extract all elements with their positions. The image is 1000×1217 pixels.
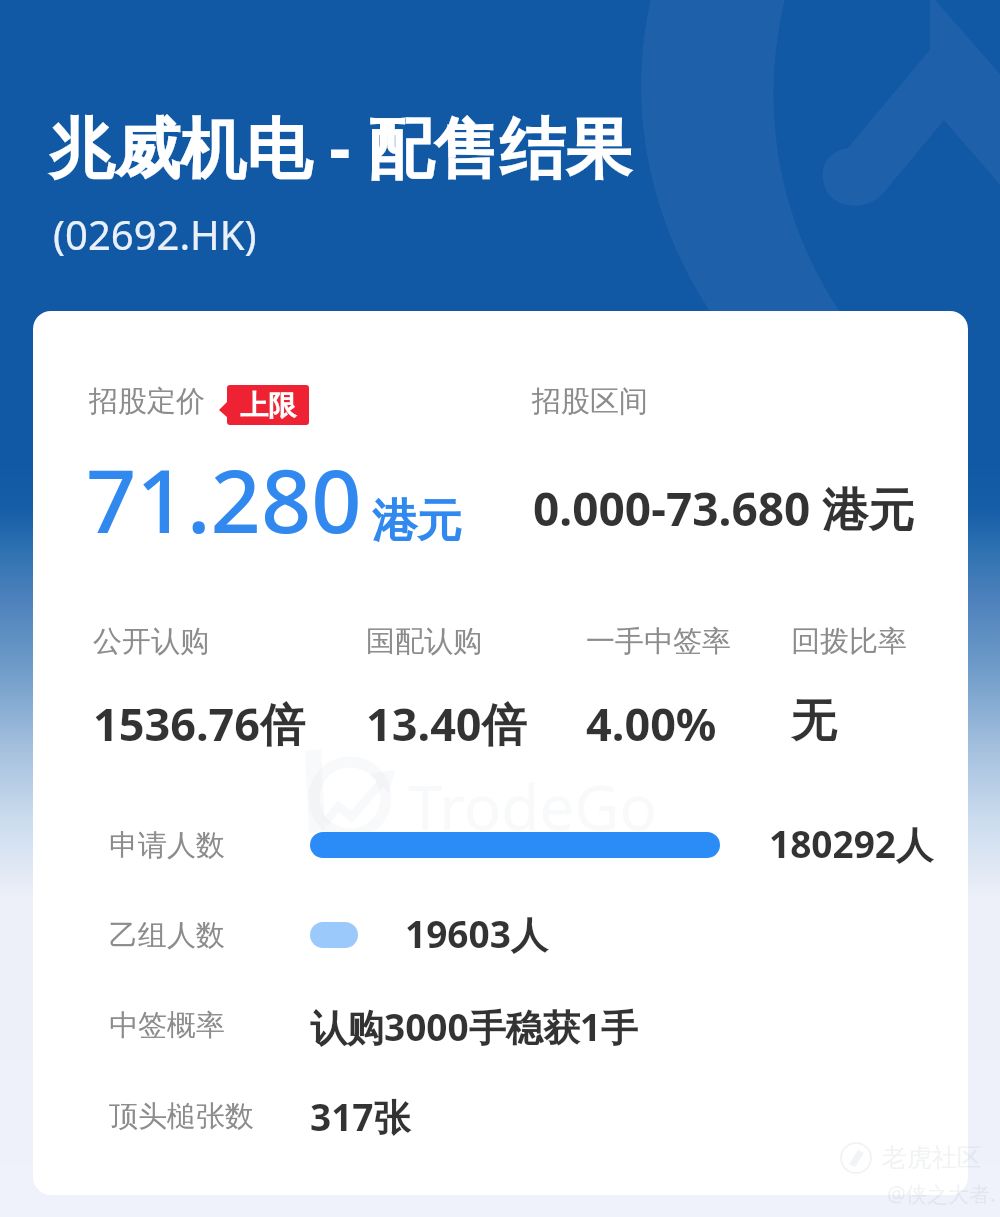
staticText: 13.40倍 bbox=[366, 693, 527, 754]
button[interactable]: 招股定价 bbox=[73, 371, 493, 551]
button[interactable]: 一手中签率 bbox=[576, 611, 771, 751]
staticText: 回拨比率 bbox=[791, 623, 907, 660]
staticText: 认购3000手稳获1手 bbox=[310, 1001, 638, 1052]
button[interactable]: 申请人数 bbox=[33, 801, 968, 889]
staticText: 中签概率 bbox=[109, 1007, 225, 1044]
staticText: 71.280 bbox=[86, 439, 362, 559]
staticText: 180292人 bbox=[769, 818, 933, 869]
button[interactable]: 顶头槌张数 bbox=[33, 1070, 968, 1158]
staticText: 老虎社区 bbox=[882, 1142, 982, 1173]
staticText: 0.000-73.680 港元 bbox=[533, 477, 915, 540]
staticText: 国配认购 bbox=[366, 623, 482, 660]
button[interactable]: 中签概率 bbox=[33, 979, 968, 1067]
button[interactable]: 国配认购 bbox=[356, 611, 566, 751]
staticText: 招股定价 bbox=[89, 383, 205, 420]
staticText: 19603人 bbox=[405, 908, 548, 959]
staticText: 4.00% bbox=[586, 693, 717, 754]
staticText: 上限 bbox=[240, 388, 296, 423]
staticText: 顶头槌张数 bbox=[109, 1098, 254, 1135]
button[interactable]: 招股区间 bbox=[517, 371, 937, 551]
staticText: 兆威机电 - 配售结果 bbox=[48, 101, 632, 191]
staticText: 公开认购 bbox=[93, 623, 209, 660]
staticText: TrodeGo bbox=[408, 764, 657, 848]
staticText: 317张 bbox=[310, 1091, 411, 1142]
staticText: 一手中签率 bbox=[586, 623, 731, 660]
staticText: 无 bbox=[791, 693, 836, 750]
staticText: 1536.76倍 bbox=[93, 693, 306, 754]
staticText: @侠之大者. bbox=[887, 1180, 996, 1209]
button[interactable]: 回拨比率 bbox=[781, 611, 931, 751]
staticText: 申请人数 bbox=[109, 827, 225, 864]
button[interactable]: 公开认购 bbox=[83, 611, 343, 751]
staticText: 乙组人数 bbox=[109, 917, 225, 954]
staticText: (02692.HK) bbox=[53, 207, 257, 261]
staticText: 招股区间 bbox=[532, 383, 648, 420]
staticText: 港元 bbox=[372, 493, 462, 550]
button[interactable]: 乙组人数 bbox=[33, 891, 968, 979]
